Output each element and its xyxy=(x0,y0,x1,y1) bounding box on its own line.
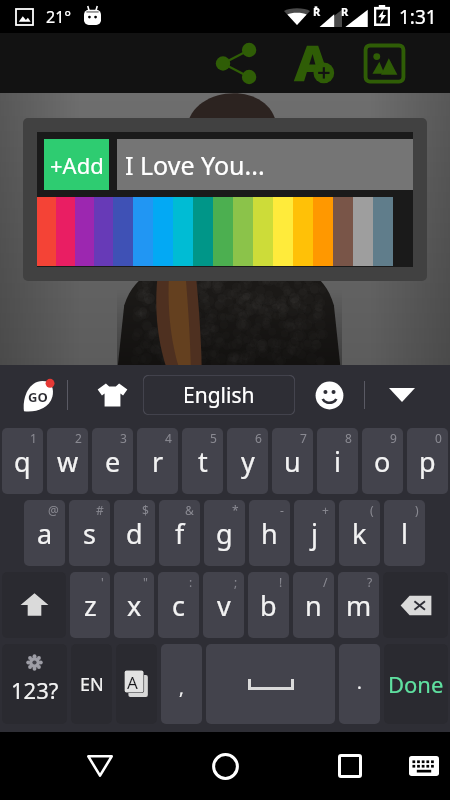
staticText: 1 xyxy=(30,430,37,446)
staticText: / xyxy=(323,574,328,590)
button[interactable]: Gallery xyxy=(355,33,413,93)
staticText: r xyxy=(152,443,164,480)
button[interactable]: Language xyxy=(71,644,112,724)
button[interactable]: ' xyxy=(70,572,110,638)
staticText: h xyxy=(261,515,278,552)
button[interactable]: , xyxy=(161,644,202,724)
staticText: Done xyxy=(388,669,444,699)
staticText: I Love You... xyxy=(125,148,265,182)
button[interactable]: +Add xyxy=(44,139,109,190)
staticText: 4 xyxy=(165,430,172,446)
staticText: l xyxy=(401,515,408,552)
button[interactable]: English xyxy=(143,375,295,415)
staticText: w xyxy=(57,443,79,480)
staticText: b xyxy=(260,587,277,624)
button[interactable]: Backspace xyxy=(383,572,448,638)
button[interactable]: @ xyxy=(24,500,65,566)
button[interactable]: Symbols xyxy=(2,644,67,724)
button[interactable]: Space xyxy=(206,644,335,724)
button[interactable]: ; xyxy=(203,572,244,638)
button[interactable]: ) xyxy=(384,500,425,566)
button[interactable]: Switch keyboard xyxy=(396,738,450,794)
button[interactable]: & xyxy=(159,500,200,566)
staticText: : xyxy=(189,574,193,590)
button[interactable]: GO Keyboard xyxy=(15,372,61,418)
staticText: a xyxy=(37,515,53,552)
button[interactable]: / xyxy=(293,572,334,638)
button[interactable]: Shift xyxy=(2,572,66,638)
staticText: o xyxy=(374,443,391,480)
button[interactable]: ! xyxy=(248,572,289,638)
staticText: 8 xyxy=(345,430,352,446)
button[interactable]: ( xyxy=(339,500,380,566)
button[interactable]: Share xyxy=(207,33,265,93)
button[interactable]: Add text xyxy=(284,33,342,93)
button[interactable]: 5 xyxy=(182,428,223,494)
staticText: $ xyxy=(142,502,149,518)
staticText: + xyxy=(322,502,329,518)
staticText: * xyxy=(232,502,239,518)
staticText: ? xyxy=(367,574,373,590)
staticText: c xyxy=(172,587,185,624)
button[interactable]: 2 xyxy=(47,428,88,494)
staticText: n xyxy=(305,587,322,624)
button[interactable]: $ xyxy=(114,500,155,566)
button[interactable]: 3 xyxy=(92,428,133,494)
button[interactable]: 6 xyxy=(227,428,268,494)
staticText: 21° xyxy=(46,6,72,28)
button[interactable]: Emoji xyxy=(308,374,350,416)
button[interactable]: * xyxy=(204,500,245,566)
staticText: v xyxy=(217,587,231,624)
button[interactable]: Recents xyxy=(322,738,378,794)
button[interactable]: More xyxy=(382,375,422,415)
staticText: 123? xyxy=(11,675,59,705)
staticText: e xyxy=(105,443,121,480)
button[interactable]: " xyxy=(114,572,154,638)
staticText: +Add xyxy=(50,150,104,180)
button[interactable]: Home xyxy=(197,738,253,794)
button[interactable]: . xyxy=(339,644,380,724)
button[interactable]: 1 xyxy=(2,428,43,494)
button[interactable]: Done xyxy=(384,644,448,724)
button[interactable]: 8 xyxy=(317,428,358,494)
button[interactable]: Keyboard layout xyxy=(116,644,157,724)
button[interactable]: : xyxy=(158,572,199,638)
button[interactable]: ? xyxy=(338,572,379,638)
button[interactable]: 9 xyxy=(362,428,403,494)
staticText: s xyxy=(83,515,96,552)
button[interactable]: Hide keyboard xyxy=(72,738,128,794)
staticText: u xyxy=(284,443,301,480)
button[interactable]: + xyxy=(294,500,335,566)
staticText: p xyxy=(419,443,436,480)
staticText: d xyxy=(126,515,143,552)
staticText: English xyxy=(183,381,255,410)
button[interactable]: Theme xyxy=(89,372,135,418)
button[interactable]: I Love You... xyxy=(117,139,413,190)
staticText: GO xyxy=(28,388,48,406)
button[interactable]: - xyxy=(249,500,290,566)
button[interactable]: 7 xyxy=(272,428,313,494)
button[interactable]: 0 xyxy=(407,428,448,494)
staticText: x xyxy=(127,587,142,624)
staticText: - xyxy=(280,502,284,518)
button[interactable]: 4 xyxy=(137,428,178,494)
button[interactable]: # xyxy=(69,500,110,566)
